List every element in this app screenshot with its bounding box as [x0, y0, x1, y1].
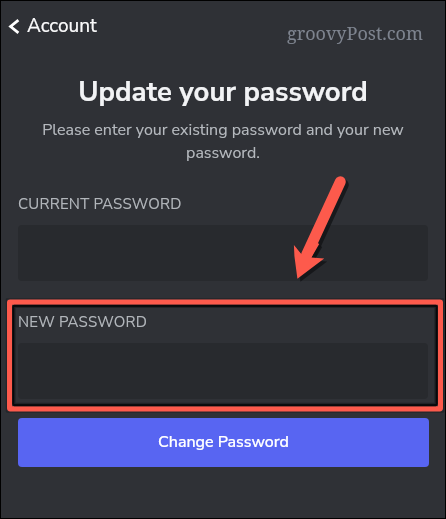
staticText: Update your password: [1, 73, 445, 111]
button[interactable]: Back: [8, 10, 97, 42]
staticText: NEW PASSWORD: [18, 312, 147, 332]
other: Back: [8, 18, 20, 35]
button[interactable]: Change Password: [18, 418, 429, 467]
staticText: Change Password: [158, 431, 289, 453]
staticText: Account: [27, 13, 97, 39]
button[interactable]: [18, 225, 428, 281]
staticText: groovyPost.com: [287, 21, 423, 46]
staticText: CURRENT PASSWORD: [18, 194, 182, 214]
staticText: Please enter your existing password and …: [22, 119, 424, 163]
